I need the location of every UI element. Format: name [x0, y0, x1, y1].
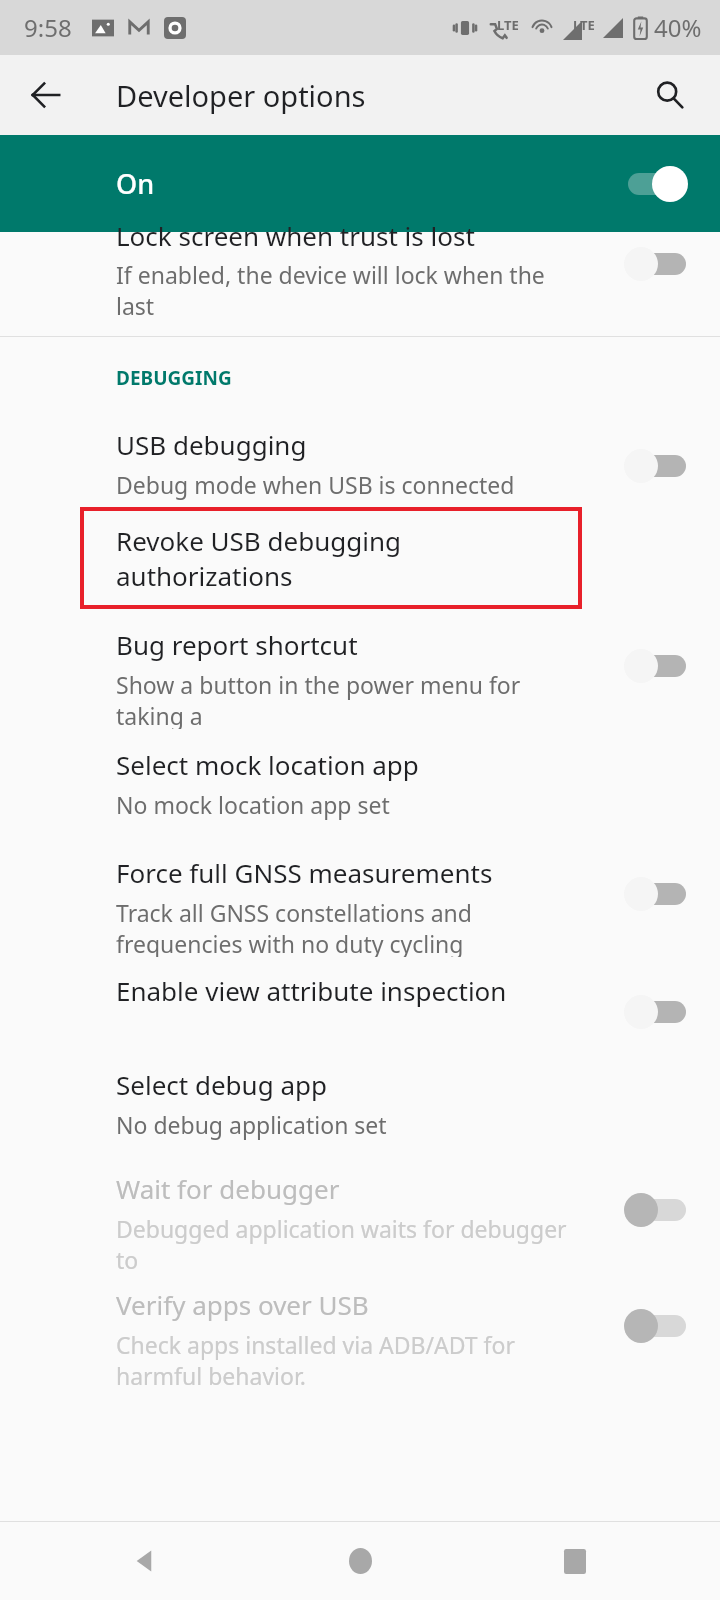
staticText: LTE	[573, 16, 595, 34]
button[interactable]: Enable view attribute inspection	[0, 957, 720, 1053]
button[interactable]: Wait for debugger	[0, 1157, 720, 1273]
button[interactable]: Home	[323, 1524, 397, 1598]
staticText: USB debugging	[116, 427, 307, 462]
staticText: Wait for debugger	[116, 1171, 340, 1206]
button[interactable]: Verify apps over USB	[0, 1273, 720, 1389]
staticText: Developer options	[116, 76, 366, 115]
staticText: Lock screen when trust is lost	[116, 218, 475, 253]
staticText: DEBUGGING	[116, 365, 232, 391]
staticText: Show a button in the power menu for taki…	[116, 669, 570, 729]
staticText: Select debug app	[116, 1067, 327, 1102]
button[interactable]: Lock screen when trust is lost	[0, 232, 720, 332]
button[interactable]: Select debug app	[0, 1053, 720, 1157]
button[interactable]: Force full GNSS measurements	[0, 841, 720, 957]
staticText: Check apps installed via ADB/ADT for	[116, 1329, 515, 1360]
button[interactable]: Bug report shortcut	[0, 613, 720, 729]
staticText: Revoke USB debugging authorizations	[116, 523, 580, 593]
button[interactable]: On	[0, 135, 720, 232]
staticText: Force full GNSS measurements	[116, 855, 493, 890]
button[interactable]: Revoke USB debugging authorizations	[82, 509, 580, 607]
staticText: Verify apps over USB	[116, 1287, 369, 1322]
staticText: Enable view attribute inspection	[116, 973, 507, 1008]
button[interactable]: Recent apps	[538, 1524, 612, 1598]
staticText: Debugged application waits for debugger …	[116, 1213, 570, 1273]
button[interactable]: USB debugging	[0, 417, 720, 509]
button[interactable]: Back	[108, 1524, 182, 1598]
staticText: Select mock location app	[116, 747, 419, 782]
staticText: No debug application set	[116, 1109, 387, 1140]
button[interactable]: Select mock location app	[0, 729, 720, 841]
staticText: harmful behavior.	[116, 1360, 306, 1389]
staticText: On	[116, 165, 155, 202]
staticText: Track all GNSS constellations and	[116, 897, 472, 928]
button[interactable]: Back	[10, 59, 82, 131]
staticText: Debug mode when USB is connected	[116, 469, 515, 500]
staticText: No mock location app set	[116, 789, 390, 820]
staticText: 9:58	[24, 11, 72, 44]
staticText: LTE	[497, 16, 519, 34]
button[interactable]: Search	[634, 59, 706, 131]
staticText: 40%	[654, 11, 702, 44]
staticText: If enabled, the device will lock when th…	[116, 259, 580, 318]
staticText: frequencies with no duty cycling	[116, 928, 464, 957]
staticText: Bug report shortcut	[116, 627, 358, 662]
